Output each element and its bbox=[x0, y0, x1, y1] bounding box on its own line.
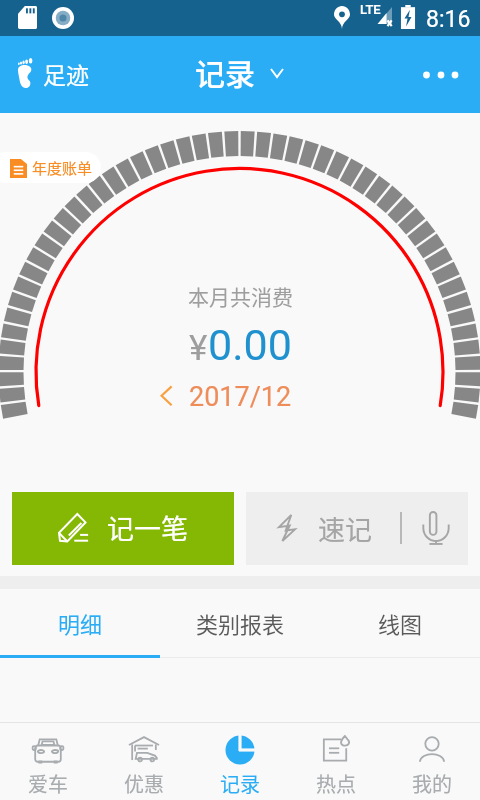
button[interactable]: 爱车 bbox=[0, 723, 96, 800]
staticText: 本月共消费 bbox=[188, 281, 293, 311]
button[interactable]: 类别报表 bbox=[160, 589, 320, 656]
button[interactable]: 优惠 bbox=[96, 723, 192, 800]
staticText: 8:16 bbox=[426, 6, 471, 33]
staticText: 记录 bbox=[220, 769, 260, 798]
button[interactable]: 我的 bbox=[384, 723, 480, 800]
button[interactable]: 年度账单 bbox=[0, 152, 101, 183]
staticText: 年度账单 bbox=[32, 157, 93, 179]
button[interactable]: 热点 bbox=[288, 723, 384, 800]
staticText: 记录 bbox=[195, 50, 255, 93]
staticText: 足迹 bbox=[43, 57, 89, 90]
button[interactable]: Previous month bbox=[154, 380, 178, 412]
staticText: 线图 bbox=[378, 607, 423, 639]
button[interactable]: 2017/12 bbox=[189, 381, 292, 413]
staticText: 热点 bbox=[316, 769, 356, 798]
staticText: 优惠 bbox=[124, 769, 164, 798]
staticText: 类别报表 bbox=[196, 607, 285, 639]
button[interactable]: More options bbox=[417, 51, 465, 99]
button[interactable]: 记录 bbox=[190, 47, 288, 95]
staticText: ¥ bbox=[189, 328, 208, 369]
button[interactable]: 记一笔 bbox=[12, 492, 234, 565]
staticText: 我的 bbox=[412, 769, 452, 798]
staticText: 记一笔 bbox=[107, 508, 188, 547]
button[interactable]: 明细 bbox=[0, 589, 160, 656]
button[interactable]: 线图 bbox=[320, 589, 480, 656]
staticText: 明细 bbox=[58, 607, 103, 639]
staticText: 爱车 bbox=[28, 769, 68, 798]
staticText: 速记 bbox=[318, 509, 372, 548]
button[interactable]: 足迹 bbox=[12, 47, 94, 99]
button[interactable]: 记录 bbox=[192, 723, 288, 800]
button[interactable]: 速记 bbox=[246, 492, 468, 565]
staticText: LTE bbox=[360, 2, 381, 17]
staticText: 0.00 bbox=[208, 320, 292, 370]
